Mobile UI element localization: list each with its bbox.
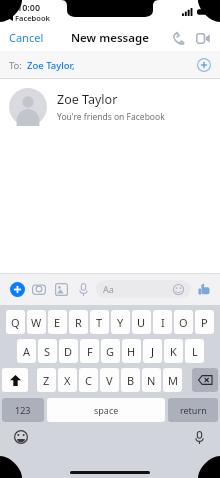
staticText: R <box>75 315 82 330</box>
button[interactable]: C <box>79 368 98 392</box>
staticText: To: <box>9 59 22 72</box>
staticText: Zoe Taylor <box>57 91 118 108</box>
button[interactable]: Zoe Taylor, <box>27 59 75 72</box>
staticText: Y <box>117 315 124 330</box>
staticText: Aa <box>103 283 114 295</box>
staticText: B <box>127 373 135 388</box>
button[interactable]: Cancel <box>0 26 53 49</box>
staticText: A <box>23 344 31 359</box>
button[interactable]: I <box>153 310 172 334</box>
button[interactable]: R <box>69 310 88 334</box>
staticText: space <box>94 404 119 416</box>
staticText: H <box>127 344 136 359</box>
staticText: W <box>31 315 42 330</box>
button[interactable]: Y <box>111 310 130 334</box>
staticText: New message <box>71 30 149 46</box>
button[interactable]: Audio call <box>168 27 190 49</box>
button[interactable]: K <box>164 339 183 363</box>
staticText: L <box>192 344 198 359</box>
staticText: You're friends on Facebook <box>57 111 165 123</box>
button[interactable]: V <box>100 368 119 392</box>
staticText: F <box>87 344 93 359</box>
button[interactable]: Voice message <box>72 278 94 300</box>
button[interactable]: T <box>90 310 109 334</box>
staticText: Cancel <box>9 30 44 45</box>
button[interactable]: H <box>122 339 141 363</box>
button[interactable]: Photos <box>50 278 72 300</box>
staticText: X <box>64 373 71 388</box>
button[interactable]: Emoji <box>10 426 32 448</box>
button[interactable]: F <box>80 339 99 363</box>
button[interactable]: P <box>195 310 214 334</box>
staticText: J <box>151 344 155 359</box>
button[interactable]: Video call <box>192 27 214 49</box>
staticText: G <box>106 344 115 359</box>
staticText: V <box>106 373 113 388</box>
staticText: Facebook <box>15 13 50 23</box>
button[interactable]: S <box>38 339 57 363</box>
button[interactable]: B <box>121 368 140 392</box>
staticText: C <box>85 373 92 388</box>
staticText: 123 <box>15 404 31 416</box>
staticText: P <box>201 315 208 330</box>
staticText: U <box>137 315 146 330</box>
button[interactable]: space <box>47 398 165 422</box>
button[interactable]: J <box>143 339 162 363</box>
staticText: T <box>96 315 103 330</box>
button[interactable]: 123 <box>2 398 44 422</box>
button[interactable]: M <box>163 368 182 392</box>
staticText: Q <box>11 315 20 330</box>
button[interactable]: Z <box>37 368 56 392</box>
staticText: Z <box>43 373 50 388</box>
button[interactable]: W <box>27 310 46 334</box>
staticText: 10:00 <box>17 1 41 13</box>
staticText: S <box>44 344 51 359</box>
button[interactable]: X <box>58 368 77 392</box>
button[interactable]: L <box>185 339 204 363</box>
staticText: D <box>64 344 73 359</box>
button[interactable]: U <box>132 310 151 334</box>
staticText: K <box>170 344 177 359</box>
button[interactable]: Add contact <box>194 55 214 75</box>
button[interactable]: Shift <box>2 368 28 392</box>
button[interactable]: More actions <box>6 278 28 300</box>
button[interactable]: Zoe Taylor <box>0 79 220 134</box>
staticText: I <box>161 315 165 330</box>
staticText: M <box>168 373 178 388</box>
staticText: N <box>147 373 156 388</box>
staticText: return <box>180 404 207 416</box>
button[interactable]: Dictation <box>188 426 210 448</box>
staticText: E <box>54 315 61 330</box>
staticText: O <box>179 315 188 330</box>
button[interactable]: D <box>59 339 78 363</box>
button[interactable]: return <box>168 398 218 422</box>
button[interactable]: Q <box>6 310 25 334</box>
button[interactable]: Camera <box>28 278 50 300</box>
button[interactable]: Aa <box>96 280 191 298</box>
button[interactable]: O <box>174 310 193 334</box>
button[interactable]: Send like <box>194 279 214 299</box>
button[interactable]: Backspace <box>192 368 218 392</box>
button[interactable]: E <box>48 310 67 334</box>
button[interactable]: A <box>17 339 36 363</box>
button[interactable]: N <box>142 368 161 392</box>
button[interactable]: G <box>101 339 120 363</box>
